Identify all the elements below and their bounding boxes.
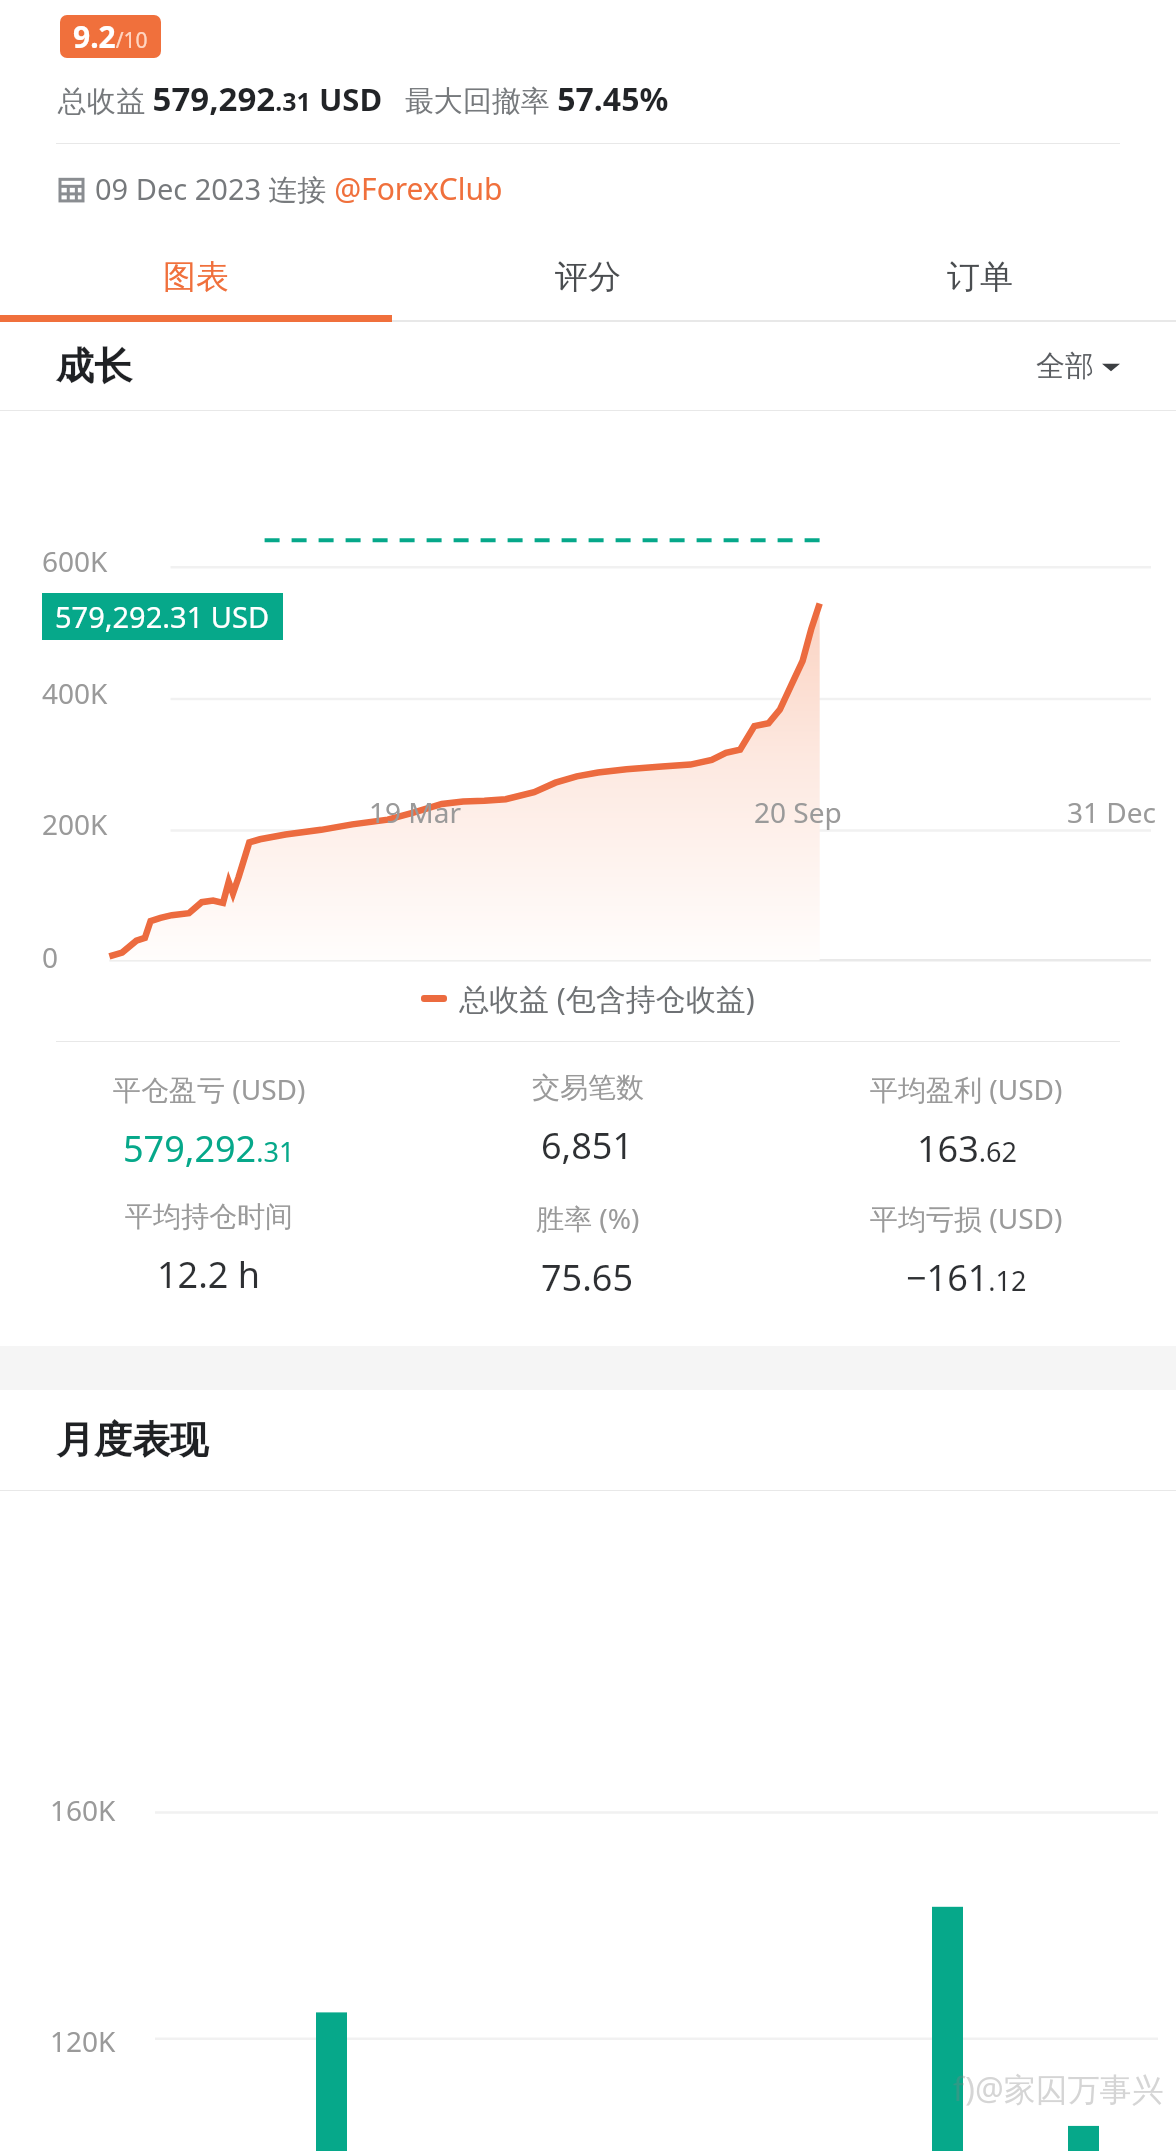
staticText: 600K	[42, 542, 108, 580]
staticText: 胜率 (%)	[536, 1199, 640, 1237]
staticText: 交易笔数	[532, 1070, 644, 1105]
staticText: 400K	[42, 674, 108, 712]
staticText: 9.2/10	[73, 16, 148, 57]
staticText: 评分	[555, 256, 621, 298]
button[interactable]: Calendar	[58, 168, 503, 209]
button[interactable]: 平均盈利 (USD)	[777, 1070, 1156, 1173]
button[interactable]: 平均持仓时间	[20, 1199, 398, 1299]
staticText: 图表	[163, 256, 229, 298]
staticText: 75.65	[541, 1253, 634, 1302]
staticText: 总收益 579,292.31 USD 最大回撤率 57.45%	[58, 76, 669, 121]
staticText: 31 Dec	[1067, 793, 1156, 831]
staticText: 平均持仓时间	[125, 1199, 293, 1234]
button[interactable]: 交易笔数	[398, 1070, 777, 1170]
staticText: 160K	[50, 1791, 116, 1829]
staticText: 6,851	[541, 1121, 634, 1170]
staticText: 0	[42, 938, 59, 976]
button[interactable]: 平均亏损 (USD)	[777, 1199, 1156, 1302]
staticText: 09 Dec 2023 连接 @ForexClub	[95, 168, 503, 209]
staticText: 全部	[1036, 348, 1094, 385]
staticText: 月度表现	[56, 1416, 208, 1464]
staticText: 579,292.31	[123, 1124, 295, 1173]
button[interactable]: 评分	[392, 239, 784, 315]
staticText: 20 Sep	[754, 793, 842, 831]
button[interactable]: 9.2/10	[60, 15, 161, 58]
staticText: f)@家囚万事兴	[953, 2067, 1164, 2111]
staticText: 平仓盈亏 (USD)	[113, 1070, 306, 1108]
staticText: 579,292.31 USD	[55, 597, 270, 636]
staticText: 订单	[947, 256, 1013, 298]
staticText: 平均盈利 (USD)	[870, 1070, 1063, 1108]
button[interactable]: 订单	[784, 239, 1176, 315]
staticText: 19 Mar	[369, 793, 461, 831]
button[interactable]: 平仓盈亏 (USD)	[20, 1070, 398, 1173]
staticText: 平均亏损 (USD)	[870, 1199, 1063, 1237]
button[interactable]: 全部	[1036, 348, 1120, 385]
staticText: 总收益 (包含持仓收益)	[459, 978, 755, 1019]
staticText: 120K	[50, 2022, 116, 2060]
staticText: −161.12	[906, 1253, 1027, 1302]
other: Calendar	[58, 175, 85, 202]
staticText: 12.2 h	[157, 1250, 261, 1299]
staticText: 163.62	[917, 1124, 1017, 1173]
staticText: 200K	[42, 805, 108, 843]
button[interactable]: 图表	[0, 239, 392, 315]
button[interactable]: 胜率 (%)	[398, 1199, 777, 1302]
staticText: 成长	[56, 342, 132, 390]
